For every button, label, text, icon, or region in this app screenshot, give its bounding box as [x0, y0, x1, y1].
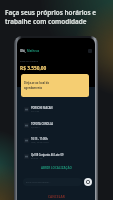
button[interactable]: CANCELAR: [17, 194, 95, 200]
staticText: Olá,: [20, 49, 27, 53]
staticText: R$ 3.550,00: [20, 65, 47, 72]
button[interactable]: 10:15 - 11:00h: [17, 134, 95, 146]
button[interactable]: ABRIR LOCALIZAÇÃO: [17, 165, 95, 171]
button[interactable]: PORSCHE MACAN: [17, 103, 95, 115]
button[interactable]: Call: [84, 178, 92, 186]
button[interactable]: Envie uma mensagem...: [23, 178, 82, 186]
staticText: ABRIR LOCALIZAÇÃO: [41, 166, 72, 170]
staticText: Saldo em carteira: [20, 60, 38, 63]
staticText: Brasília - DF: [31, 157, 43, 160]
staticText: FLZ1A99: [31, 110, 40, 113]
staticText: Hoje, 25 de Março: [31, 141, 49, 144]
staticText: Envie uma mensagem...: [26, 181, 51, 184]
staticText: Matheus: [27, 49, 40, 53]
button[interactable]: Qd 08 Conjunto 46 Lote 09: [17, 150, 95, 162]
staticText: Faça seus próprios horários e trabalhe c…: [5, 8, 96, 26]
button[interactable]: Dirija-se ao local do agendamento: [21, 74, 89, 97]
staticText: CANCELAR: [48, 195, 65, 199]
staticText: TOYOTA COROLLA: [31, 122, 54, 125]
staticText: KJH2B44: [31, 126, 40, 129]
staticText: PORSCHE MACAN: [31, 106, 53, 109]
button[interactable]: TOYOTA COROLLA: [17, 119, 95, 131]
staticText: Qd 08 Conjunto 46 Lote 09: [31, 153, 64, 156]
staticText: 10:15 - 11:00h: [31, 137, 48, 140]
button[interactable]: Notifications: [88, 49, 92, 53]
staticText: Dirija-se ao local do agendamento: [24, 81, 50, 90]
